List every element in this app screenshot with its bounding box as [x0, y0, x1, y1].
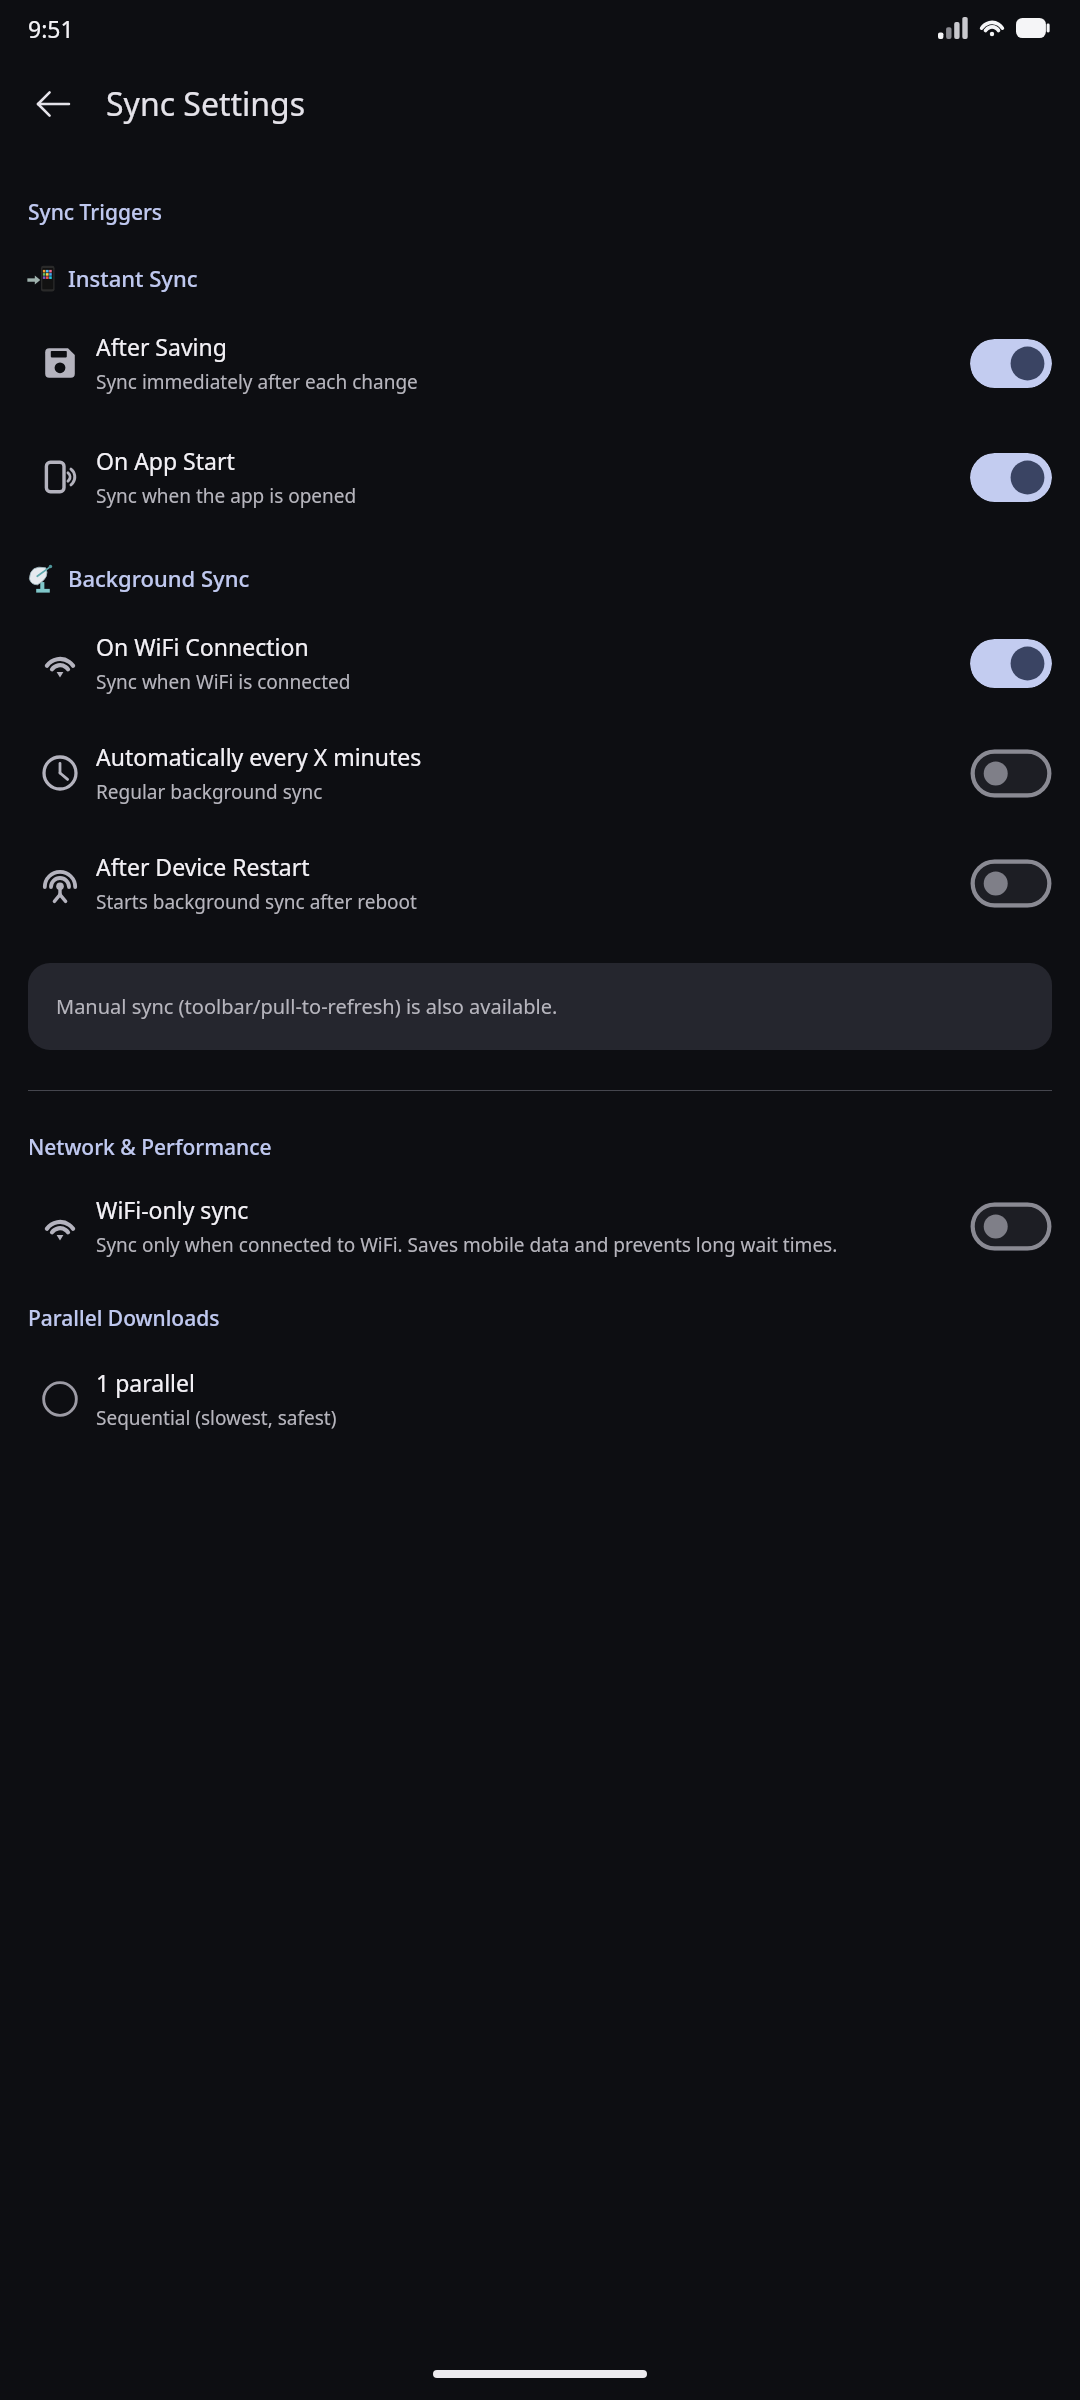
staticText: After Device Restart [96, 851, 310, 882]
staticText: Automatically every X minutes [96, 741, 422, 772]
button[interactable]: After Device Restart [0, 837, 1080, 929]
button[interactable]: After Device Restart [970, 859, 1052, 908]
staticText: Starts background sync after reboot [96, 889, 417, 915]
button[interactable]: On App Start [970, 453, 1052, 502]
button[interactable]: After Saving [970, 339, 1052, 388]
staticText: Network & Performance [28, 1133, 272, 1162]
staticText: Parallel Downloads [28, 1304, 220, 1333]
button[interactable]: On WiFi Connection [0, 617, 1080, 709]
button[interactable]: On WiFi Connection [970, 639, 1052, 688]
staticText: On App Start [96, 445, 235, 476]
staticText: Sync Settings [106, 82, 306, 126]
button[interactable]: Automatically every X minutes [970, 749, 1052, 798]
staticText: Sync Triggers [28, 198, 163, 227]
staticText: Sequential (slowest, safest) [96, 1405, 337, 1431]
button[interactable]: On App Start [0, 431, 1080, 523]
button[interactable]: Back [22, 73, 84, 135]
staticText: 9:51 [28, 13, 74, 44]
staticText: After Saving [96, 331, 227, 362]
staticText: Instant Sync [68, 263, 198, 293]
button[interactable]: After Saving [0, 317, 1080, 409]
staticText: Sync when WiFi is connected [96, 669, 351, 695]
staticText: Background Sync [68, 563, 250, 593]
button[interactable]: WiFi-only sync [970, 1202, 1052, 1251]
staticText: 1 parallel [96, 1367, 195, 1398]
staticText: Sync only when connected to WiFi. Saves … [96, 1232, 838, 1258]
staticText: WiFi-only sync [96, 1194, 249, 1225]
staticText: On WiFi Connection [96, 631, 309, 662]
button[interactable]: WiFi-only sync [0, 1194, 1080, 1258]
staticText: Sync immediately after each change [96, 369, 418, 395]
button[interactable]: Automatically every X minutes [0, 727, 1080, 819]
staticText: Sync when the app is opened [96, 483, 357, 509]
staticText: Regular background sync [96, 779, 323, 805]
staticText: Manual sync (toolbar/pull-to-refresh) is… [56, 993, 558, 1020]
button[interactable]: 1 parallel [0, 1367, 1080, 1431]
